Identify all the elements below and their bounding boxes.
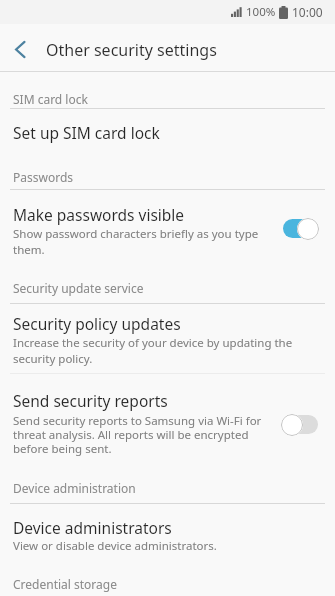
staticText: 100% xyxy=(246,4,276,20)
button[interactable] xyxy=(0,26,40,73)
staticText: Send security reports xyxy=(13,390,168,411)
staticText: View or disable device administrators. xyxy=(13,538,217,554)
staticText: Security update service xyxy=(13,280,144,296)
button[interactable] xyxy=(0,108,335,157)
staticText: Security policy updates xyxy=(13,313,181,334)
staticText: Make passwords visible xyxy=(13,204,185,225)
staticText: Send security reports to Samsung via Wi-… xyxy=(13,413,262,457)
button[interactable] xyxy=(281,413,319,436)
staticText: Device administration xyxy=(13,480,136,496)
button[interactable] xyxy=(0,303,335,372)
staticText: Passwords xyxy=(13,169,74,185)
staticText: 10:00 xyxy=(292,4,323,20)
staticText: Show password characters briefly as you … xyxy=(13,226,259,257)
staticText: Set up SIM card lock xyxy=(13,122,160,143)
button[interactable] xyxy=(281,217,319,240)
staticText: Increase the security of your device by … xyxy=(13,335,293,366)
button[interactable] xyxy=(0,373,335,458)
button[interactable] xyxy=(0,189,335,262)
staticText: SIM card lock xyxy=(13,91,88,107)
staticText: Other security settings xyxy=(46,39,217,61)
staticText: Credential storage xyxy=(13,576,117,592)
button[interactable] xyxy=(0,503,335,557)
staticText: Device administrators xyxy=(13,517,172,538)
